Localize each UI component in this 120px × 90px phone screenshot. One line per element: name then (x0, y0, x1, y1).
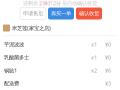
staticText: ¥3 (105, 80, 111, 87)
staticText: 后自动确认收货 (62, 0, 97, 7)
button[interactable]: 确认收货 (76, 7, 102, 19)
staticText: x1 (91, 41, 97, 48)
staticText: 乳酸菌多士 (4, 54, 29, 61)
staticText: 配送费 (4, 80, 19, 87)
staticText: 确认收货 (79, 10, 99, 17)
staticText: 23时12分 (39, 0, 61, 7)
button[interactable]: 乳酸菌多士 (0, 51, 120, 64)
staticText: ¥0 (105, 41, 111, 48)
staticText: 米芝莲(家宝之店) (12, 24, 51, 32)
staticText: ¥0 (105, 54, 111, 61)
button[interactable]: 再买一单 (48, 7, 74, 19)
staticText: 还剩余 (23, 0, 38, 7)
button[interactable]: 申请售后 (20, 7, 46, 19)
staticText: x2 (91, 67, 97, 74)
button[interactable]: 米芝莲(家宝之店) (0, 20, 120, 35)
staticText: 锅贴1 (4, 67, 17, 74)
staticText: 申请售后 (23, 10, 43, 17)
staticText: x1 (91, 54, 97, 61)
staticText: ¥6 (105, 67, 111, 74)
button[interactable]: 锅贴1 (0, 64, 120, 77)
staticText: 再买一单 (51, 10, 71, 17)
staticText: 芋泥波波 (4, 41, 24, 48)
button[interactable]: 芋泥波波 (0, 38, 120, 51)
button[interactable]: 配送费 (0, 77, 120, 90)
